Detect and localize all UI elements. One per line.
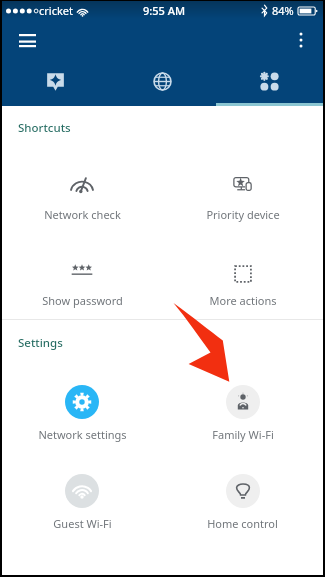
staticText: Network check <box>44 207 121 222</box>
button[interactable]: Open navigation menu <box>10 23 44 57</box>
button[interactable]: Priority device <box>162 176 323 222</box>
button[interactable]: Home control <box>162 474 323 531</box>
staticText: cricket <box>39 3 73 18</box>
button[interactable]: Family Wi-Fi <box>162 385 323 442</box>
button[interactable]: More actions <box>162 262 323 308</box>
staticText: Guest Wi-Fi <box>53 516 112 531</box>
staticText: Network settings <box>38 427 127 442</box>
button[interactable]: Network check <box>2 176 162 222</box>
staticText: Settings <box>18 335 63 351</box>
button[interactable]: Guest Wi-Fi <box>2 474 162 531</box>
button[interactable]: Settings <box>216 61 323 106</box>
staticText: 9:55 AM <box>143 3 186 18</box>
staticText: Show password <box>42 293 123 308</box>
staticText: More actions <box>209 293 277 308</box>
staticText: Shortcuts <box>18 120 71 136</box>
button[interactable]: Assistant <box>2 61 109 106</box>
button[interactable]: Network settings <box>2 385 162 442</box>
staticText: Home control <box>207 516 278 531</box>
staticText: Family Wi-Fi <box>212 427 274 442</box>
staticText: Priority device <box>206 207 280 222</box>
button[interactable]: More options <box>285 24 317 56</box>
button[interactable]: Show password <box>2 262 162 308</box>
button[interactable]: Network <box>109 61 216 106</box>
staticText: 84% <box>272 3 294 18</box>
